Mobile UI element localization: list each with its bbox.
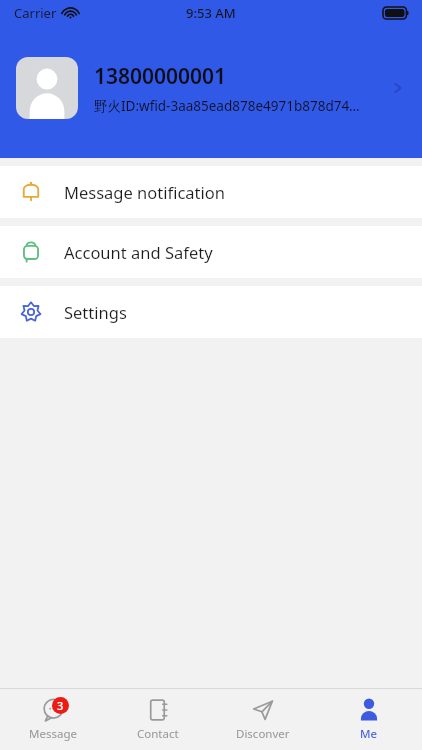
staticText: Account and Safety (64, 241, 213, 263)
staticText: Message (29, 726, 77, 742)
staticText: Settings (64, 301, 127, 323)
button[interactable]: Account and Safety (0, 226, 422, 278)
button[interactable]: Message notification (0, 166, 422, 218)
staticText: Carrier (14, 4, 57, 22)
staticText: 9:53 AM (186, 4, 236, 22)
staticText: 3 (57, 698, 64, 713)
button[interactable]: Contact (105, 697, 210, 742)
staticText: 13800000001 (94, 62, 227, 91)
staticText: Contact (137, 726, 179, 742)
button[interactable]: Disconver (210, 697, 316, 742)
staticText: Disconver (236, 726, 290, 742)
button[interactable]: 13800000001 (0, 50, 422, 126)
staticText: 野火ID:wfid-3aa85ead878e4971b878d74… (94, 97, 360, 115)
button[interactable]: Message (0, 697, 105, 742)
staticText: Me (360, 726, 378, 742)
button[interactable]: Me (316, 697, 422, 742)
button[interactable]: Settings (0, 286, 422, 338)
staticText: Message notification (64, 181, 225, 203)
